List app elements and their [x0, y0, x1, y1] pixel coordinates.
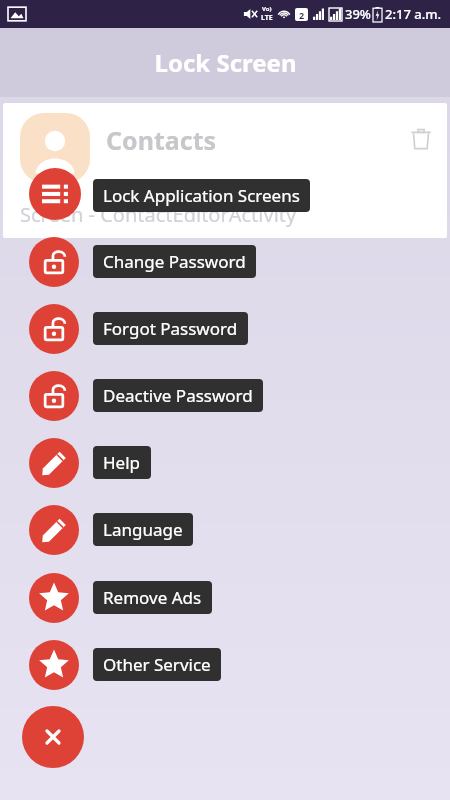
button[interactable]: Change Password	[29, 237, 79, 287]
button[interactable]: Lock Application Screens	[93, 179, 310, 212]
staticText: Language	[103, 518, 183, 541]
button[interactable]: Other Service	[93, 648, 221, 681]
staticText: Remove Ads	[103, 586, 202, 609]
staticText: Vo)	[262, 5, 272, 13]
button[interactable]: Deactive Password	[93, 379, 263, 412]
staticText: Lock Application Screens	[103, 184, 300, 207]
button[interactable]: Forgot Password	[93, 312, 248, 345]
button[interactable]: Contacts	[3, 103, 447, 238]
staticText: Lock Screen	[154, 46, 297, 79]
staticText: 2:17 a.m.	[385, 5, 442, 23]
button[interactable]: Delete	[403, 121, 439, 157]
staticText: Forgot Password	[103, 317, 238, 340]
button[interactable]: Other Service	[29, 640, 79, 690]
button[interactable]: Help	[29, 438, 79, 488]
button[interactable]: Help	[93, 446, 151, 479]
staticText: Other Service	[103, 653, 211, 676]
button[interactable]: Deactive Password	[29, 371, 79, 421]
staticText: LTE	[261, 13, 273, 23]
button[interactable]: Remove Ads	[29, 573, 79, 623]
button[interactable]: Forgot Password	[29, 304, 79, 354]
button[interactable]: Remove Ads	[93, 581, 212, 614]
button[interactable]: Close	[22, 706, 84, 768]
button[interactable]: Language	[93, 513, 193, 546]
button[interactable]: Lock Application Screens	[29, 168, 81, 220]
staticText: Change Password	[103, 250, 246, 273]
staticText: Contacts	[106, 123, 217, 157]
staticText: Help	[103, 451, 141, 474]
staticText: 39%	[345, 5, 371, 23]
staticText: Screen - ContactEditorActivity	[20, 201, 297, 228]
staticText: 2	[299, 9, 305, 21]
button[interactable]: Language	[29, 505, 79, 555]
staticText: Deactive Password	[103, 384, 253, 407]
button[interactable]: Change Password	[93, 245, 256, 278]
